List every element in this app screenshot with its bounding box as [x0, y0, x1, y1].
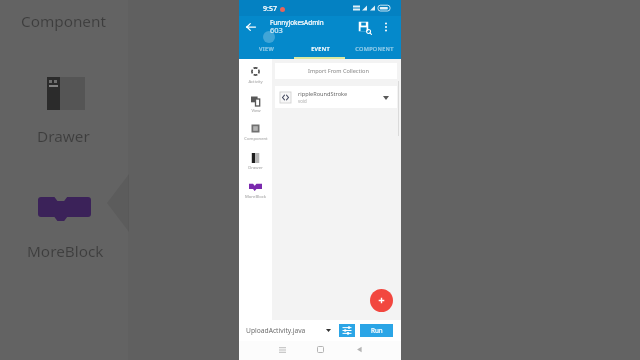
staticText: COMPONENT: [355, 45, 394, 53]
button[interactable]: View: [239, 89, 272, 116]
button[interactable]: Add: [370, 289, 393, 312]
staticText: Component: [244, 136, 268, 142]
button[interactable]: VIEW: [239, 41, 293, 57]
staticText: Drawer: [248, 165, 263, 171]
staticText: EVENT: [311, 45, 330, 53]
button[interactable]: Back: [242, 18, 260, 36]
staticText: 9:57: [263, 4, 277, 14]
button[interactable]: Home: [310, 340, 330, 359]
button[interactable]: More options: [377, 18, 395, 36]
button[interactable]: Component: [239, 117, 272, 144]
button[interactable]: Import From Collection: [275, 63, 397, 79]
staticText: Run: [371, 326, 383, 335]
staticText: VIEW: [259, 45, 274, 53]
button[interactable]: Run: [360, 324, 393, 337]
staticText: void: [298, 98, 307, 104]
button[interactable]: Settings: [339, 324, 355, 337]
button[interactable]: Save: [355, 18, 373, 36]
button[interactable]: Activity: [239, 60, 272, 87]
button[interactable]: Recents: [272, 340, 292, 359]
staticText: FunnyJokesAdmin: [270, 18, 324, 27]
staticText: Activity: [248, 79, 263, 85]
button[interactable]: EVENT: [293, 41, 347, 57]
staticText: Component: [21, 11, 106, 32]
staticText: View: [251, 108, 261, 114]
button[interactable]: UploadActivity.java: [244, 322, 336, 339]
staticText: UploadActivity.java: [246, 326, 306, 335]
button[interactable]: COMPONENT: [347, 41, 401, 57]
button[interactable]: Drawer: [239, 146, 272, 173]
staticText: Import From Collection: [308, 67, 369, 75]
staticText: Drawer: [37, 126, 90, 147]
button[interactable]: MoreBlock: [239, 175, 272, 202]
staticText: 603: [270, 25, 283, 35]
button[interactable]: Back: [349, 340, 369, 359]
button[interactable]: rippleRoundStroke: [275, 86, 397, 108]
staticText: MoreBlock: [245, 194, 266, 200]
staticText: rippleRoundStroke: [298, 90, 348, 98]
staticText: MoreBlock: [27, 241, 104, 262]
